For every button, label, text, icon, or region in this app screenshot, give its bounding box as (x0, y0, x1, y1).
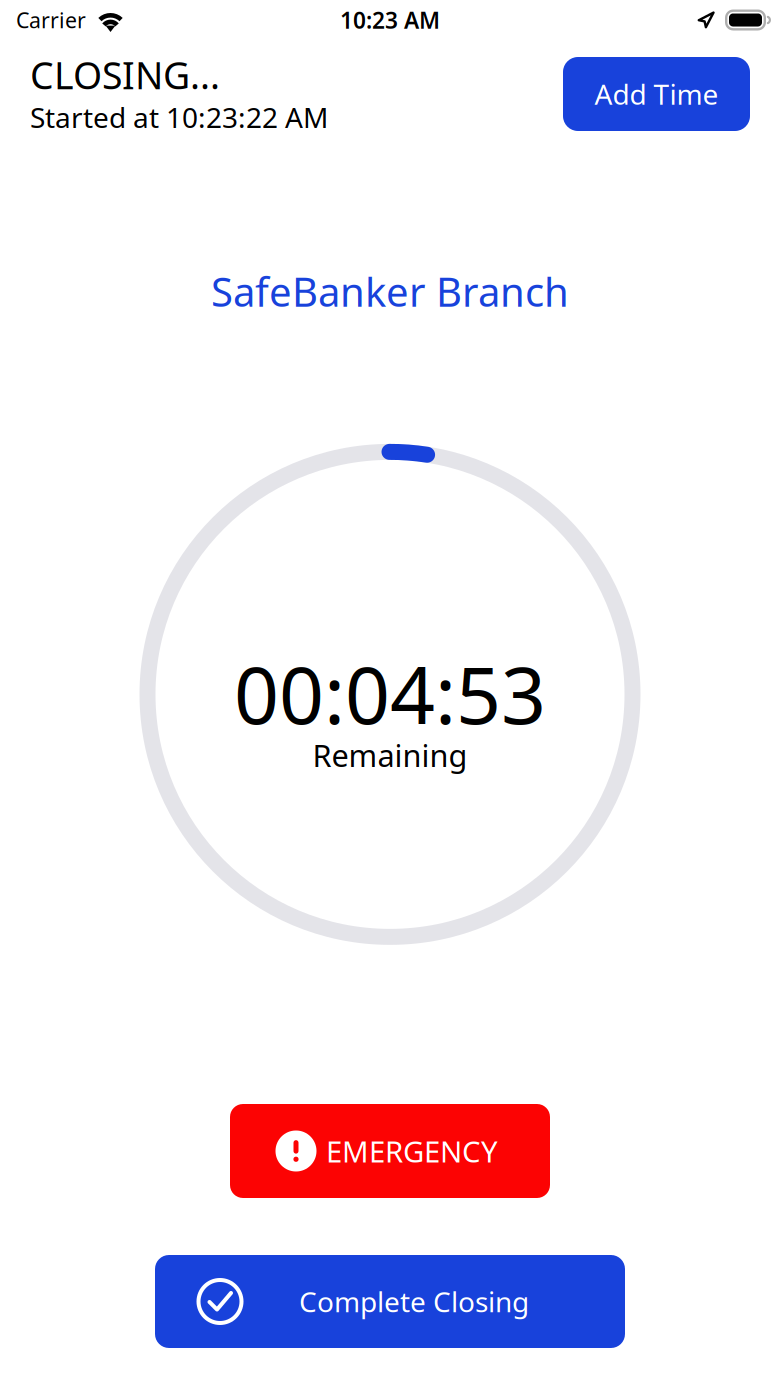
button[interactable]: Add Time (563, 57, 750, 131)
button[interactable]: EMERGENCY (230, 1104, 550, 1198)
staticText: 00:04:53 (234, 641, 546, 746)
staticText: 10:23 AM (340, 5, 440, 35)
staticText: Started at 10:23:22 AM (30, 99, 328, 136)
staticText: Remaining (312, 735, 467, 775)
staticText: SafeBanker Branch (211, 265, 569, 318)
button[interactable]: Complete Closing (155, 1255, 625, 1348)
staticText: Add Time (594, 75, 718, 113)
staticText: Carrier (16, 6, 86, 34)
staticText: EMERGENCY (326, 1131, 498, 1170)
staticText: Complete Closing (299, 1283, 529, 1320)
staticText: CLOSING... (30, 50, 220, 100)
